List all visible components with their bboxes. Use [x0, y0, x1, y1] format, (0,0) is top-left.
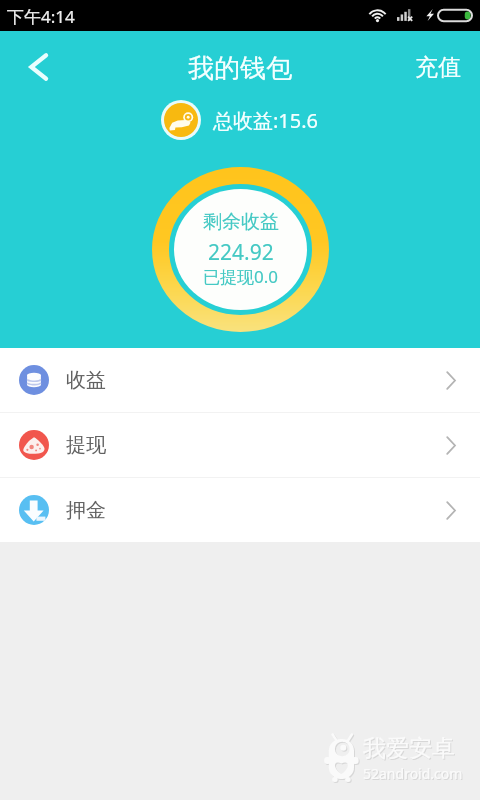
button[interactable]: 收益 — [0, 348, 480, 412]
staticText: 我爱安卓 — [364, 735, 456, 764]
staticText: 总收益:15.6 — [213, 107, 319, 134]
button[interactable]: 押金 — [0, 478, 480, 542]
staticText: 224.92 — [208, 238, 274, 267]
staticText: 我爱安卓 — [363, 734, 455, 763]
staticText: 收益 — [66, 368, 106, 393]
staticText: 52android.com — [363, 764, 463, 783]
staticText: 押金 — [66, 498, 106, 523]
staticText: 提现 — [66, 433, 106, 458]
staticText: 剩余收益 — [203, 210, 279, 234]
button[interactable]: 充值 — [399, 40, 480, 95]
staticText: 52android.com — [364, 765, 464, 784]
staticText: 充值 — [415, 53, 461, 82]
staticText: 下午4:14 — [7, 5, 75, 28]
button[interactable]: Back — [4, 39, 72, 95]
staticText: 已提现0.0 — [203, 265, 279, 288]
staticText: 我的钱包 — [188, 52, 292, 85]
button[interactable]: 提现 — [0, 413, 480, 477]
